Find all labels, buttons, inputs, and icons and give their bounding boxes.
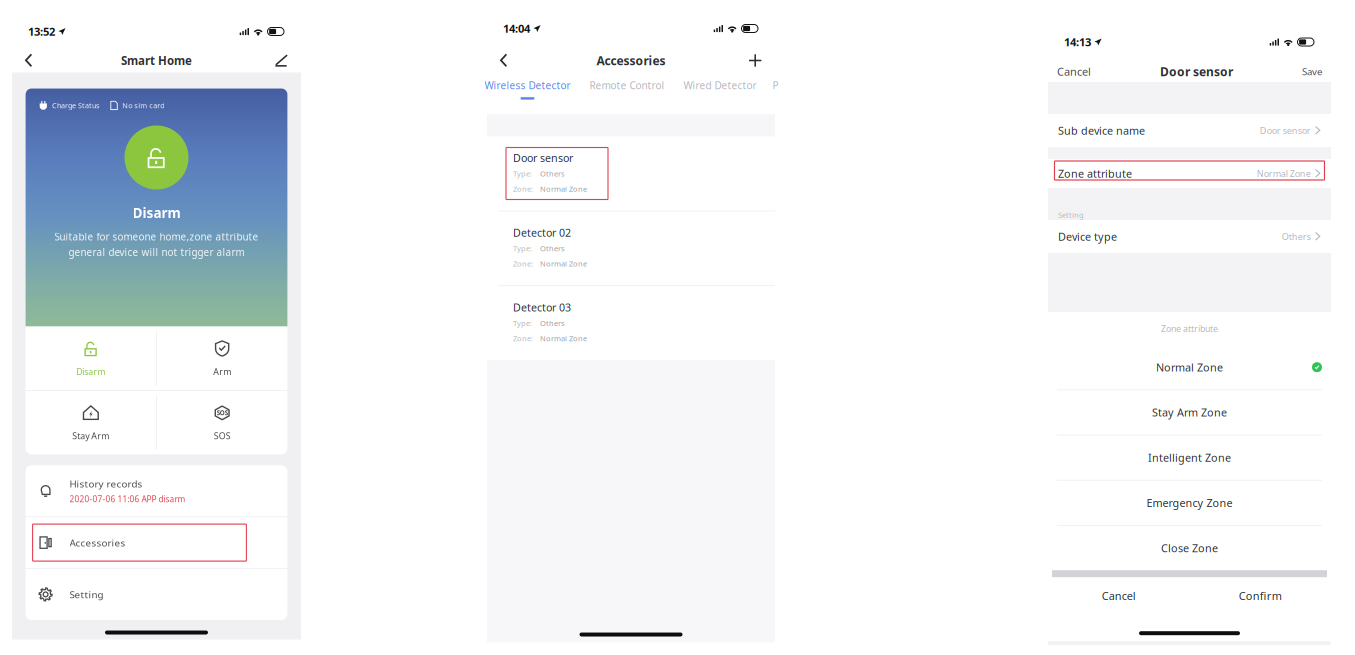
button[interactable]: Detector 03 [487,286,775,360]
staticText: Accessories [70,536,126,549]
staticText: Disarm [76,365,105,377]
staticText: Intelligent Zone [1148,450,1231,465]
staticText: 2020-07-06 11:06 APP disarm [70,493,186,505]
button[interactable]: Disarm [26,326,156,390]
staticText: Wired Detector [683,78,756,92]
button[interactable]: History records [26,465,287,516]
staticText: Remote Control [589,78,664,92]
staticText: Stay Arm Zone [1152,405,1227,420]
button[interactable]: Device type [1048,220,1331,253]
staticText: Zone: [513,258,533,269]
button[interactable]: Stay Arm [26,391,156,454]
staticText: Save [1302,65,1322,78]
staticText: Others [1282,230,1311,243]
staticText: P [772,78,778,92]
staticText: Type: [513,318,532,328]
staticText: Others [540,318,565,328]
button[interactable]: Close Zone [1048,526,1331,570]
staticText: Zone attribute [1058,166,1132,181]
staticText: Type: [513,168,532,179]
button[interactable]: Confirm [1189,577,1331,614]
button[interactable]: Back [25,49,53,71]
button[interactable]: Zone attribute [1048,159,1331,188]
staticText: Zone: [513,333,533,343]
button[interactable]: Edit [260,49,288,71]
button[interactable]: Cancel [1057,64,1091,79]
button[interactable]: Stay Arm Zone [1048,390,1331,435]
staticText: Door sensor [513,150,573,165]
button[interactable]: SOS [157,391,287,454]
staticText: Others [540,168,565,179]
staticText: Wireless Detector [484,78,570,92]
staticText: Accessories [596,52,665,69]
staticText: SOS [217,409,228,417]
staticText: Cancel [1057,64,1091,79]
staticText: Normal Zone [1257,167,1311,180]
staticText: Detector 03 [513,300,571,315]
button[interactable]: Wireless Detector [484,78,570,100]
button[interactable]: Accessories [26,517,287,568]
button[interactable]: Arm [157,326,287,390]
button[interactable]: Cancel [1048,577,1189,614]
button[interactable]: Save [1302,65,1322,78]
staticText: Zone: [513,184,533,194]
staticText: Door sensor [1160,63,1233,80]
staticText: Normal Zone [540,258,587,269]
staticText: Setting [70,588,104,601]
button[interactable]: Door sensor [487,136,775,210]
staticText: Suitable for someone home,zone attribute [54,230,258,243]
button[interactable]: Back [500,49,528,71]
staticText: Door sensor [1260,124,1311,137]
staticText: Device type [1058,229,1117,244]
staticText: 13:52 [28,24,55,39]
staticText: Detector 02 [513,225,571,240]
staticText: Sub device name [1058,123,1145,138]
staticText: SOS [214,430,231,442]
button[interactable]: Emergency Zone [1048,481,1331,525]
staticText: History records [70,477,143,490]
staticText: Confirm [1239,588,1282,603]
staticText: Close Zone [1161,541,1218,555]
staticText: Charge Status [52,101,99,110]
staticText: Normal Zone [1156,360,1223,374]
button[interactable]: Sub device name [1048,114,1331,147]
staticText: 14:04 [503,21,530,36]
button[interactable]: Setting [26,569,287,620]
staticText: Others [540,243,565,253]
button[interactable]: P [772,78,778,92]
button[interactable]: Intelligent Zone [1048,435,1331,480]
staticText: No sim card [122,100,165,110]
button[interactable]: Remote Control [589,78,664,92]
staticText: Setting [1058,210,1084,220]
button[interactable]: Add accessory [734,49,762,71]
staticText: Disarm [132,203,180,222]
staticText: Normal Zone [540,184,587,194]
staticText: Type: [513,243,532,253]
button[interactable]: Normal Zone [1048,345,1331,389]
staticText: Emergency Zone [1146,495,1232,510]
staticText: Arm [213,365,231,377]
staticText: Smart Home [121,53,192,68]
staticText: 14:13 [1064,34,1091,50]
staticText: Zone attribute [1161,322,1218,334]
button[interactable]: Detector 02 [487,211,775,285]
staticText: general device will not trigger alarm [68,245,244,259]
button[interactable]: Wired Detector [683,78,756,92]
staticText: Cancel [1102,588,1136,603]
staticText: Normal Zone [540,333,587,343]
staticText: Stay Arm [72,430,109,442]
